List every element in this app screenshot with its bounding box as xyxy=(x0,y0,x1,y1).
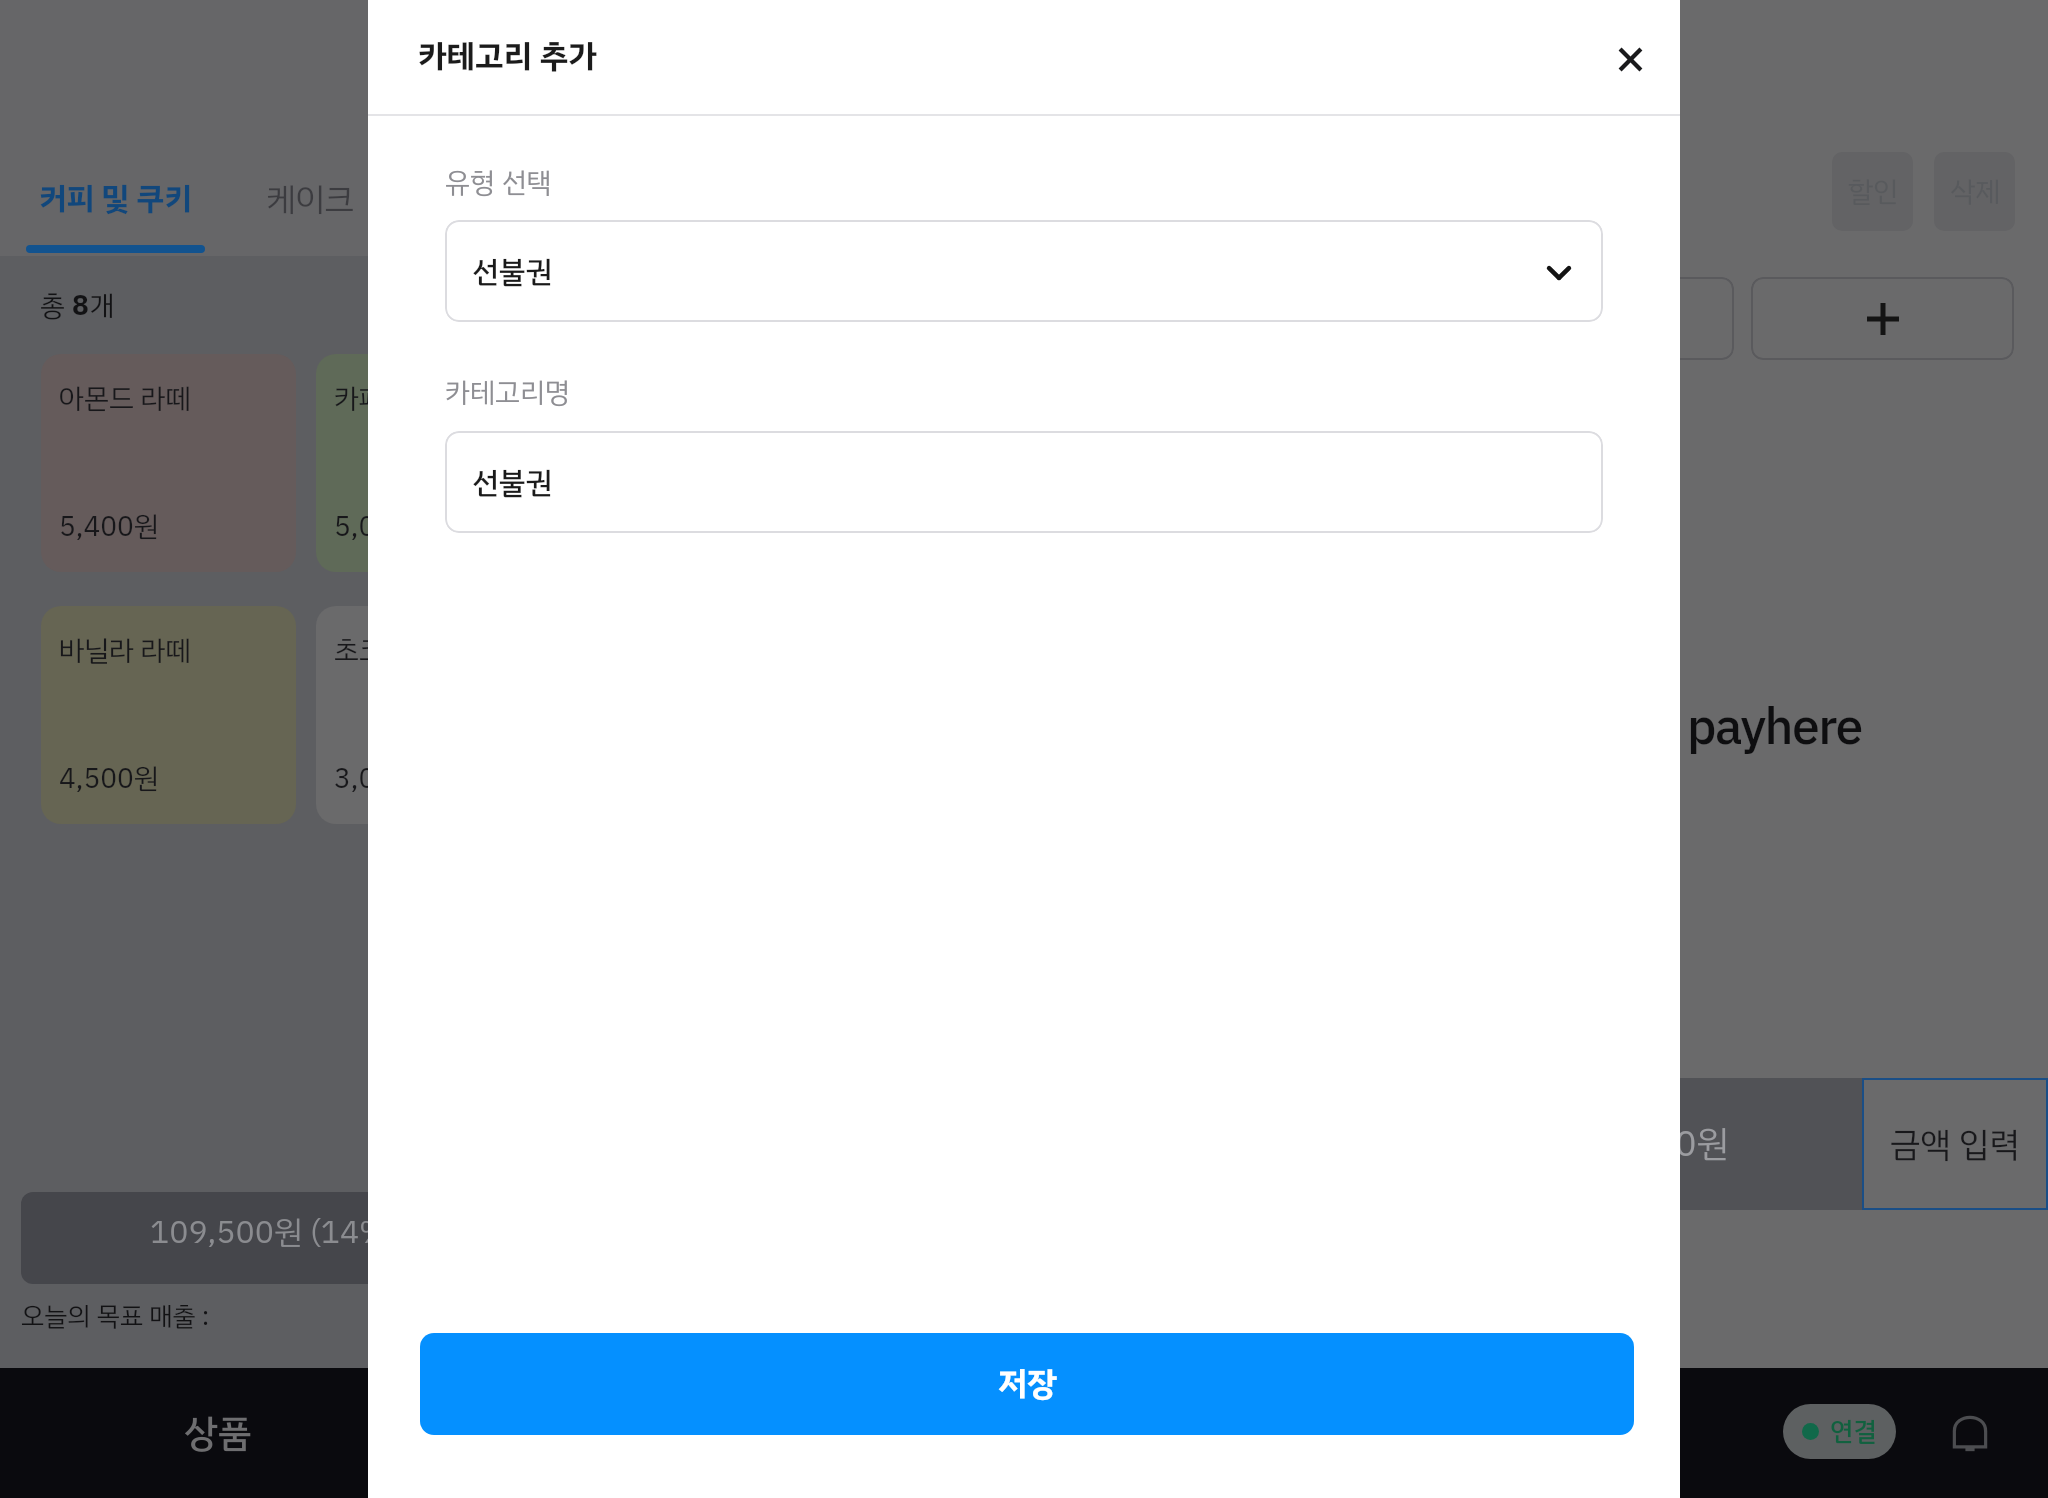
staticText: 0원 xyxy=(1675,1117,1729,1171)
staticText: 주문내역 xyxy=(552,1405,688,1462)
staticText: payhere xyxy=(1687,690,1862,765)
staticText: 4,500원 xyxy=(609,506,709,548)
staticText: 109,500원 (14%) xyxy=(150,1208,400,1256)
staticText: 총 xyxy=(40,285,72,327)
staticText: 설정 xyxy=(1326,1405,1394,1462)
button[interactable]: 아몬드 라떼 xyxy=(41,354,296,572)
staticText: 상품 xyxy=(184,1405,252,1462)
staticText: 저장 xyxy=(998,1359,1057,1409)
button[interactable]: 선불권 xyxy=(445,431,1603,533)
staticText: 3,000원 xyxy=(334,758,434,800)
button[interactable]: 케이크 xyxy=(258,0,362,256)
button[interactable]: 바닐라 라떼 xyxy=(591,354,846,572)
staticText: 4,500원 xyxy=(59,758,159,800)
staticText: 선불권 xyxy=(472,460,553,505)
staticText: 8 xyxy=(72,285,89,327)
button[interactable]: 녹차 라떼 xyxy=(1141,354,1290,572)
staticText: 커피 및 쿠키 xyxy=(39,175,192,222)
button[interactable]: 설정 xyxy=(1175,1368,1545,1498)
staticText: 바닐라 라떼 xyxy=(59,630,191,672)
staticText: 케이크 xyxy=(266,175,355,225)
button[interactable]: 주문내역 xyxy=(435,1368,805,1498)
staticText: 5,200원 xyxy=(1159,506,1259,548)
button[interactable]: 선불권 xyxy=(445,220,1603,322)
button[interactable]: Notifications xyxy=(1946,1409,1994,1457)
staticText: 초코 쿠키 xyxy=(334,630,441,672)
staticText: 5,000원 xyxy=(334,506,434,548)
staticText: 개 xyxy=(89,285,114,327)
button[interactable]: 연결 xyxy=(1783,1404,1896,1459)
staticText: 디저트 xyxy=(423,175,512,225)
button[interactable]: 커피 및 쿠키 xyxy=(26,0,205,256)
staticText: 삭제 xyxy=(1950,171,2000,213)
staticText: 연결 xyxy=(1830,1412,1877,1451)
button[interactable]: 금액 입력 xyxy=(1862,1078,2048,1210)
staticText: 할인 xyxy=(1848,171,1898,213)
staticText: 카페 라떼 xyxy=(334,378,441,420)
button[interactable]: 매출 xyxy=(805,1368,1175,1498)
staticText: 금액 입력 xyxy=(1890,1119,2020,1170)
button[interactable]: Close xyxy=(1594,23,1666,95)
button[interactable]: Add item xyxy=(1751,277,2014,360)
button[interactable]: 상품 xyxy=(0,1368,435,1498)
button[interactable]: 109,500원 (14%) xyxy=(21,1192,1269,1284)
button[interactable]: 초코 쿠키 xyxy=(316,606,571,824)
button[interactable]: 카페 모카 xyxy=(866,354,1121,572)
staticText: 카테고리명 xyxy=(445,372,570,414)
staticText: 5,400원 xyxy=(59,506,159,548)
staticText: 선불권 xyxy=(472,249,553,294)
button[interactable]: 저장 xyxy=(420,1333,1634,1435)
button[interactable]: 카페 라떼 xyxy=(316,354,571,572)
staticText: 유형 선택 xyxy=(445,162,552,204)
staticText: 매출 xyxy=(956,1405,1024,1462)
staticText: 아몬드 라떼 xyxy=(59,378,191,420)
staticText: 오늘의 목표 매출 : xyxy=(21,1297,210,1336)
button[interactable]: Quantity xyxy=(1290,277,1734,360)
staticText: 카테고리 추가 xyxy=(418,32,597,80)
button[interactable]: 바닐라 라떼 xyxy=(41,606,296,824)
staticText: 5,500원 xyxy=(884,506,984,548)
button[interactable]: 디저트 xyxy=(415,0,519,256)
